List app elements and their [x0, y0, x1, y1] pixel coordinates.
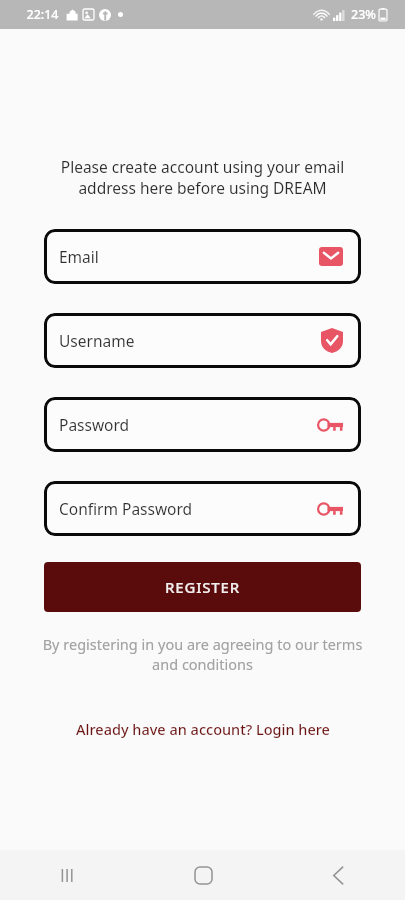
staticText: Password	[59, 414, 317, 435]
staticText: Username	[59, 330, 321, 351]
button[interactable]: Confirm Password	[44, 481, 361, 536]
button[interactable]: REGISTER	[44, 562, 361, 612]
staticText: Confirm Password	[59, 498, 317, 519]
button[interactable]: Home	[175, 850, 231, 900]
staticText: 22:14	[26, 6, 59, 23]
button[interactable]: Back	[310, 850, 366, 900]
other: Email	[319, 247, 343, 266]
other: Username verified	[321, 328, 343, 353]
staticText: REGISTER	[165, 577, 240, 597]
button[interactable]: Email	[44, 229, 361, 284]
staticText: Already have an account? Login here	[76, 719, 330, 739]
button[interactable]: Recents	[40, 850, 96, 900]
other: Password	[317, 418, 343, 432]
other: Password	[317, 502, 343, 516]
staticText: Please create account using your email a…	[30, 156, 375, 199]
button[interactable]: Password	[44, 397, 361, 452]
button[interactable]: Username	[44, 313, 361, 368]
staticText: 23%	[351, 6, 376, 23]
staticText: By registering in you are agreeing to ou…	[24, 634, 381, 675]
staticText: Email	[59, 246, 319, 267]
button[interactable]: Already have an account? Login here	[68, 715, 338, 743]
